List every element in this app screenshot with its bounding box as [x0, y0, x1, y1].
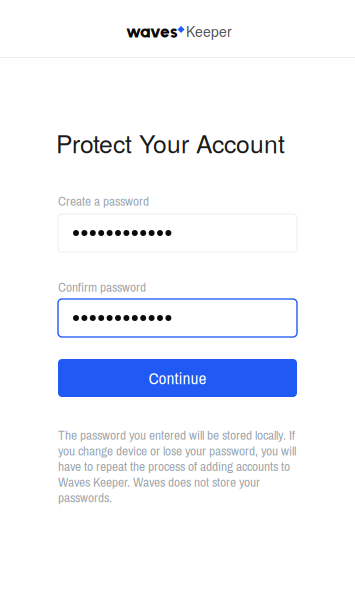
staticText: Create a password [58, 192, 149, 210]
staticText: you change device or lose your password,… [58, 442, 296, 460]
staticText: Protect Your Account [56, 125, 285, 160]
button[interactable]: Confirm password [58, 299, 297, 337]
staticText: passwords. [58, 488, 112, 506]
staticText: Continue [148, 366, 206, 390]
staticText: The password you entered will be stored … [58, 426, 295, 444]
staticText: waves [126, 21, 178, 42]
button[interactable]: Create a password [58, 214, 297, 252]
staticText: Waves Keeper. Waves does not store your [58, 473, 260, 491]
button[interactable]: Continue [58, 359, 297, 397]
staticText: have to repeat the process of adding acc… [58, 457, 290, 475]
staticText: Confirm password [58, 278, 146, 296]
staticText: Keeper [186, 21, 232, 41]
